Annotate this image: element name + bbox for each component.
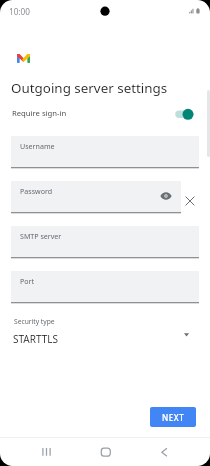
staticText: Security type <box>14 317 55 326</box>
button[interactable]: Recent apps <box>16 440 77 464</box>
button[interactable]: Username <box>11 136 199 167</box>
staticText: SMTP server <box>20 231 62 241</box>
staticText: Password <box>20 186 53 196</box>
button[interactable]: Back <box>134 440 195 464</box>
staticText: NEXT <box>162 412 185 423</box>
button[interactable]: Clear <box>183 194 197 208</box>
staticText: Port <box>20 276 35 286</box>
staticText: Require sign-in <box>12 108 67 118</box>
button[interactable]: Password <box>11 181 181 212</box>
button[interactable]: Require sign-in <box>173 106 196 123</box>
staticText: 10:00 <box>9 6 30 17</box>
staticText: STARTTLS <box>13 332 59 346</box>
button[interactable]: Port <box>11 271 199 302</box>
staticText: Username <box>20 141 55 151</box>
button[interactable]: Home <box>77 440 134 464</box>
button[interactable]: NEXT <box>150 407 196 427</box>
button[interactable]: SMTP server <box>11 226 199 257</box>
button[interactable]: STARTTLS <box>5 329 205 349</box>
button[interactable]: Require sign-in <box>5 105 205 124</box>
button[interactable]: Show password <box>159 189 173 203</box>
staticText: Outgoing server settings <box>11 79 168 97</box>
